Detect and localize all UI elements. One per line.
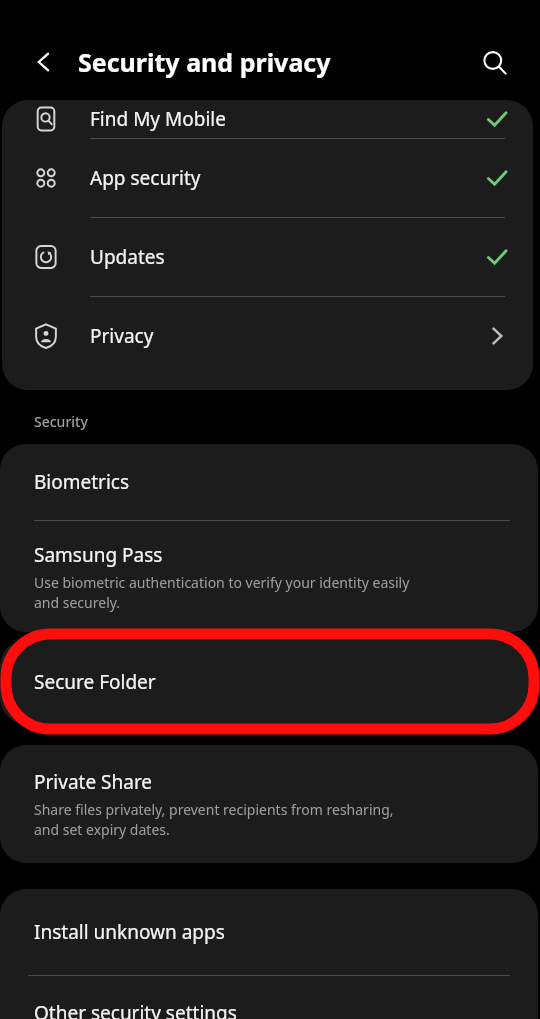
staticText: App security (90, 165, 201, 191)
button[interactable]: Private Share (0, 745, 538, 863)
staticText: Other security settings (34, 1000, 237, 1019)
staticText: Private Share (34, 769, 153, 795)
button[interactable]: Other security settings (0, 976, 538, 1019)
button[interactable]: Private Share (0, 745, 538, 863)
staticText: Privacy (90, 323, 154, 349)
button[interactable]: Samsung Pass (0, 521, 538, 632)
button[interactable]: Privacy (2, 297, 533, 375)
staticText: Use biometric authentication to verify y… (34, 573, 410, 612)
staticText: Security (34, 412, 88, 431)
button[interactable]: Install unknown apps (0, 889, 538, 975)
staticText: Security and privacy (78, 45, 331, 79)
button[interactable]: Biometrics (0, 444, 538, 520)
staticText: Find My Mobile (90, 106, 226, 132)
staticText: Samsung Pass (34, 542, 163, 568)
button[interactable]: Find My Mobile (2, 100, 533, 138)
staticText: Install unknown apps (34, 919, 225, 945)
button[interactable]: Back (20, 38, 68, 86)
button[interactable]: Updates (2, 218, 533, 296)
staticText: Updates (90, 244, 165, 270)
button[interactable]: Secure Folder (0, 640, 538, 724)
button[interactable]: App security (2, 139, 533, 217)
staticText: Secure Folder (34, 669, 156, 695)
staticText: Biometrics (34, 469, 130, 495)
button[interactable]: Search (470, 38, 520, 88)
staticText: Share files privately, prevent recipient… (34, 800, 394, 839)
